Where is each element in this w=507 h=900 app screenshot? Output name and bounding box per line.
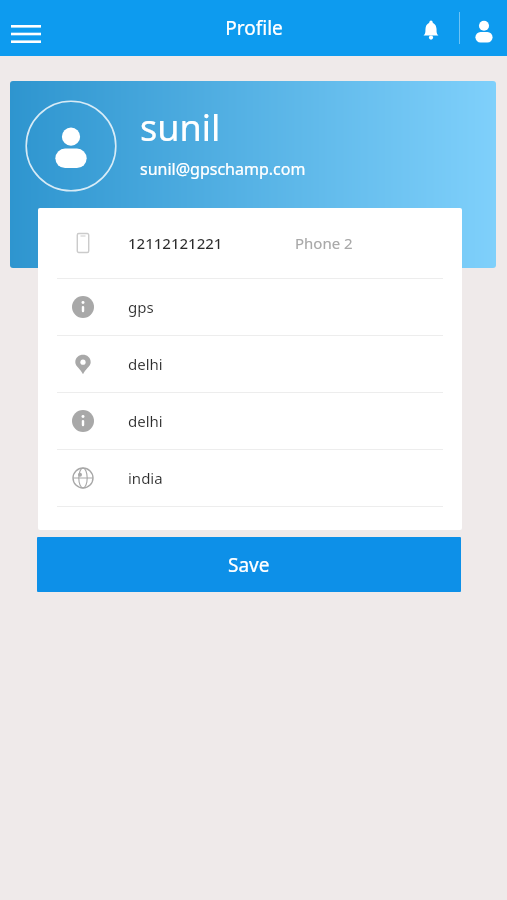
staticText: Save [228, 552, 270, 578]
staticText: 12112121221 [128, 233, 223, 253]
staticText: sunil@gpschamp.com [140, 158, 306, 180]
staticText: delhi [128, 354, 163, 374]
button[interactable]: Notifications [410, 10, 452, 52]
staticText: india [128, 468, 163, 488]
staticText: delhi [128, 411, 163, 431]
button[interactable]: Menu [4, 12, 48, 56]
staticText: Profile [225, 15, 283, 41]
button[interactable]: india [38, 450, 462, 506]
staticText: sunil [140, 103, 221, 152]
button[interactable]: Account [463, 10, 505, 52]
button[interactable]: delhi [38, 393, 462, 449]
button[interactable]: Save [37, 537, 461, 592]
staticText: gps [128, 297, 154, 317]
staticText: Phone 2 [295, 233, 353, 253]
button[interactable]: delhi [38, 336, 462, 392]
button[interactable]: 12112121221 [38, 208, 462, 278]
button[interactable]: gps [38, 279, 462, 335]
